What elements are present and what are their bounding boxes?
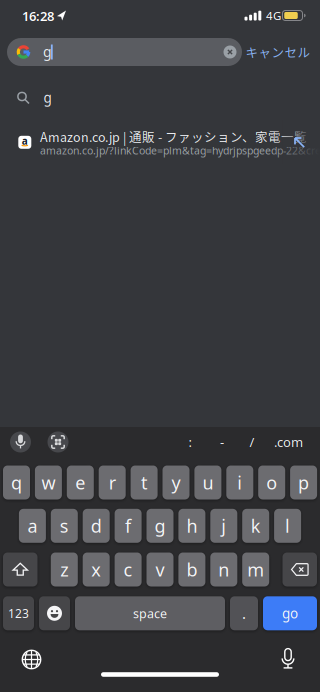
staticText: x <box>91 557 101 582</box>
button[interactable]: z <box>51 552 78 586</box>
button[interactable] <box>10 431 31 452</box>
button[interactable] <box>47 431 68 452</box>
staticText: g <box>154 513 165 538</box>
button[interactable]: g <box>0 79 320 117</box>
staticText: p <box>298 470 309 495</box>
staticText: c <box>124 557 133 582</box>
button[interactable]: f <box>115 509 142 543</box>
staticText: t <box>141 470 147 495</box>
staticText: v <box>155 557 164 582</box>
button[interactable]: e <box>67 465 94 499</box>
staticText: Amazon.co.jp | 通販 - ファッション、家電一覧 <box>40 127 307 146</box>
button[interactable]: . <box>230 596 258 630</box>
button[interactable]: g <box>146 509 173 543</box>
staticText: go <box>282 604 298 622</box>
button[interactable]: - <box>220 433 224 451</box>
button[interactable] <box>3 552 37 586</box>
staticText: k <box>251 513 261 538</box>
staticText: u <box>202 470 213 495</box>
button[interactable]: a <box>19 509 46 543</box>
staticText: キャンセル <box>245 43 310 61</box>
button[interactable]: r <box>99 465 126 499</box>
staticText: i <box>237 470 242 495</box>
button[interactable]: u <box>194 465 221 499</box>
button[interactable]: v <box>146 552 173 586</box>
staticText: 123 <box>8 605 29 621</box>
staticText: .com <box>274 433 303 451</box>
staticText: j <box>221 513 226 538</box>
button[interactable]: q <box>3 465 30 499</box>
staticText: l <box>285 513 290 538</box>
button[interactable] <box>281 648 295 669</box>
button[interactable]: j <box>210 509 237 543</box>
button[interactable] <box>223 45 236 58</box>
button[interactable]: n <box>210 552 237 586</box>
button[interactable]: b <box>178 552 205 586</box>
staticText: n <box>218 557 229 582</box>
button[interactable]: d <box>83 509 110 543</box>
staticText: space <box>133 605 167 622</box>
staticText: s <box>60 513 69 538</box>
staticText: f <box>125 513 131 538</box>
button[interactable]: space <box>75 596 225 630</box>
button[interactable]: i <box>226 465 253 499</box>
button[interactable]: c <box>115 552 142 586</box>
button[interactable]: x <box>83 552 110 586</box>
staticText: m <box>247 557 264 582</box>
button[interactable]: w <box>35 465 62 499</box>
button[interactable] <box>282 552 317 586</box>
button[interactable]: s <box>51 509 78 543</box>
staticText: a <box>22 134 28 148</box>
button[interactable]: h <box>178 509 205 543</box>
staticText: q <box>11 470 22 495</box>
button[interactable]: k <box>242 509 269 543</box>
staticText: z <box>60 557 68 582</box>
button[interactable] <box>294 137 305 148</box>
button[interactable]: m <box>242 552 269 586</box>
staticText: amazon.co.jp/?linkCode=plm&tag=hydrjpspg… <box>40 143 320 158</box>
button[interactable]: y <box>162 465 189 499</box>
button[interactable]: 123 <box>3 596 34 630</box>
staticText: o <box>266 470 277 495</box>
staticText: w <box>41 470 55 495</box>
button[interactable]: / <box>249 433 254 451</box>
staticText: / <box>249 433 254 451</box>
staticText: g <box>43 42 52 61</box>
button[interactable]: l <box>274 509 301 543</box>
button[interactable]: .com <box>274 433 303 451</box>
button[interactable]: go <box>263 596 317 630</box>
staticText: b <box>186 557 197 582</box>
button[interactable]: a <box>0 120 320 164</box>
button[interactable]: g <box>7 38 242 66</box>
button[interactable]: t <box>131 465 158 499</box>
staticText: a <box>27 513 37 538</box>
staticText: d <box>91 513 102 538</box>
button[interactable]: キャンセル <box>245 43 310 61</box>
staticText: y <box>171 470 180 495</box>
button[interactable] <box>39 596 70 630</box>
button[interactable]: p <box>290 465 317 499</box>
staticText: g <box>43 88 51 107</box>
staticText: - <box>220 433 224 451</box>
button[interactable] <box>21 649 41 669</box>
staticText: r <box>109 470 116 495</box>
staticText: 4G <box>266 8 281 23</box>
staticText: . <box>242 603 246 623</box>
staticText: 16:28 <box>22 7 54 25</box>
staticText: : <box>188 433 191 451</box>
button[interactable]: : <box>188 433 191 451</box>
staticText: e <box>75 470 85 495</box>
staticText: h <box>186 513 197 538</box>
button[interactable]: o <box>258 465 285 499</box>
